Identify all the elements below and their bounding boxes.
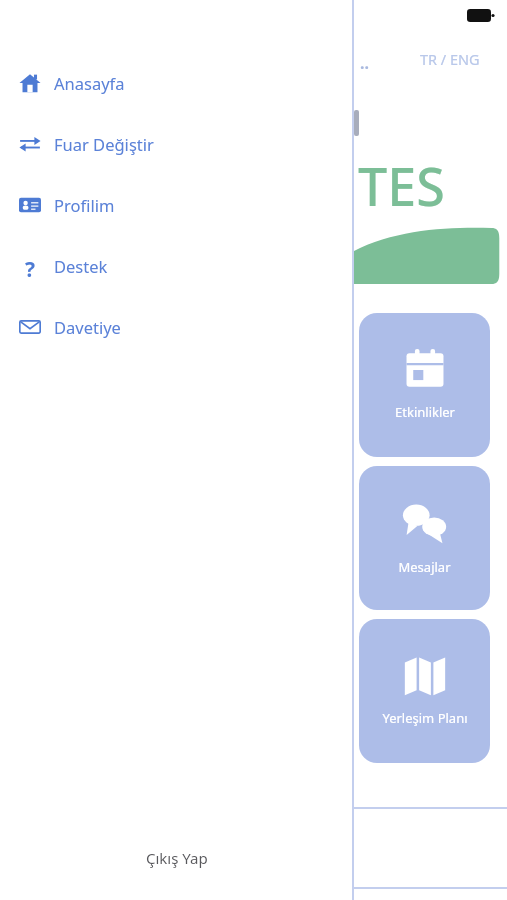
button[interactable]: Çıkış Yap: [130, 842, 224, 874]
button[interactable]: Etkinlikler: [359, 313, 490, 457]
staticText: Etkinlikler: [395, 403, 455, 421]
button[interactable]: TR / ENG: [420, 49, 480, 69]
button[interactable]: Profilim: [0, 174, 353, 235]
button[interactable]: Anasayfa: [0, 52, 353, 113]
staticText: Destek: [54, 255, 108, 277]
staticText: TES: [358, 150, 445, 221]
staticText: Profilim: [54, 194, 115, 216]
staticText: ?: [25, 255, 36, 277]
staticText: Anasayfa: [54, 72, 125, 94]
staticText: Davetiye: [54, 316, 121, 338]
staticText: Fuar Değiştir: [54, 133, 154, 155]
staticText: Çıkış Yap: [146, 848, 208, 868]
staticText: Mesajlar: [398, 558, 451, 576]
button[interactable]: Fuar Değiştir: [0, 113, 353, 174]
staticText: ..: [360, 52, 369, 74]
button[interactable]: Yerleşim Planı: [359, 619, 490, 763]
button[interactable]: ?: [0, 235, 353, 296]
button[interactable]: Davetiye: [0, 296, 353, 357]
staticText: Yerleşim Planı: [382, 709, 468, 727]
button[interactable]: Mesajlar: [359, 466, 490, 610]
